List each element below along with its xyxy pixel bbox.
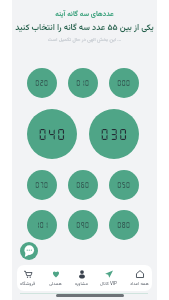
- staticText: مشاوره: [75, 280, 88, 287]
- button[interactable]: 010: [68, 68, 98, 98]
- button[interactable]: 090: [68, 210, 98, 240]
- button[interactable]: کانال VIP: [99, 270, 118, 287]
- button[interactable]: 060: [68, 170, 98, 200]
- button[interactable]: همدلی: [48, 270, 63, 287]
- staticText: کانال VIP: [100, 280, 117, 287]
- button[interactable]: 040: [27, 109, 77, 159]
- staticText: 010: [76, 80, 90, 87]
- button[interactable]: همه اعداد: [129, 270, 150, 287]
- staticText: 050: [117, 182, 131, 189]
- button[interactable]: 020: [27, 68, 57, 98]
- button[interactable]: 070: [27, 170, 57, 200]
- button[interactable]: Support chat: [20, 242, 38, 260]
- button[interactable]: 000: [109, 68, 139, 98]
- staticText: عددهای سه گانه آینه: [12, 9, 157, 20]
- staticText: 020: [35, 80, 49, 87]
- staticText: همدلی: [49, 280, 62, 287]
- staticText: 000: [117, 80, 131, 87]
- staticText: این بخش الهی در حال تکمیل است ...: [12, 36, 157, 44]
- staticText: 030: [100, 127, 128, 142]
- button[interactable]: 080: [109, 210, 139, 240]
- button[interactable]: 030: [89, 109, 139, 159]
- staticText: 101: [35, 222, 49, 229]
- staticText: 060: [76, 182, 90, 189]
- staticText: یکی از بین ۵۵ عدد سه گانه را انتخاب کنید: [12, 21, 157, 34]
- button[interactable]: 050: [109, 170, 139, 200]
- staticText: همه اعداد: [130, 280, 149, 287]
- button[interactable]: فروشگاه: [19, 270, 37, 287]
- staticText: 040: [38, 127, 66, 142]
- button[interactable]: 101: [27, 210, 57, 240]
- staticText: 080: [117, 222, 131, 229]
- staticText: فروشگاه: [20, 280, 36, 287]
- staticText: 090: [76, 222, 90, 229]
- staticText: 070: [35, 182, 49, 189]
- button[interactable]: مشاوره: [74, 270, 89, 287]
